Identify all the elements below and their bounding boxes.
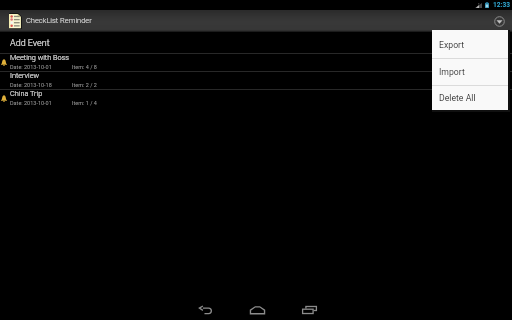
button[interactable]: Recent apps (285, 300, 333, 320)
button[interactable]: Home (233, 300, 281, 320)
button[interactable]: Add Event (0, 32, 512, 53)
staticText: Date: 2013-10-18 (10, 82, 52, 88)
staticText: Date: 2013-10-01 (10, 64, 52, 70)
staticText: Item: 1 / 4 (72, 100, 97, 106)
button[interactable]: Meeting with Boss (0, 54, 512, 71)
button[interactable]: Delete All (432, 86, 508, 110)
staticText: China Trip (10, 89, 43, 98)
button[interactable]: China Trip (0, 90, 512, 107)
button[interactable]: Interview (0, 72, 512, 89)
button[interactable]: Back (181, 300, 229, 320)
button[interactable]: More options (490, 12, 508, 30)
staticText: Item: 2 / 2 (72, 82, 97, 88)
staticText: Delete All (439, 93, 476, 103)
staticText: Import (439, 67, 465, 77)
button[interactable]: Import (432, 59, 508, 85)
staticText: Add Event (10, 38, 50, 49)
staticText: Interview (10, 71, 40, 80)
staticText: Date: 2013-10-01 (10, 100, 52, 106)
staticText: Export (439, 40, 465, 50)
staticText: Item: 4 / 8 (72, 64, 97, 70)
staticText: Meeting with Boss (10, 53, 69, 62)
staticText: CheckList Reminder (26, 16, 92, 25)
button[interactable]: Export (432, 32, 508, 58)
staticText: 12:33 (493, 1, 510, 9)
